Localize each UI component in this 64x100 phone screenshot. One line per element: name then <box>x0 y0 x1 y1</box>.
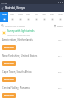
staticText: New Yorkshire, United States <box>2 54 58 58</box>
button[interactable]: New Yorkshire, United States <box>0 53 64 69</box>
staticText: Book now <box>4 46 14 49</box>
staticText: Mon <box>2 13 7 16</box>
staticText: Book now <box>4 94 14 97</box>
staticText: Search for a place <box>5 24 25 27</box>
button[interactable]: Book now <box>2 77 16 82</box>
button[interactable]: Central Valley, Panama <box>0 85 64 100</box>
staticText: Fri <box>35 13 38 16</box>
staticText: Tue <box>10 13 14 16</box>
staticText: Sunny with light winds <box>7 29 35 33</box>
button[interactable]: Back <box>0 4 5 12</box>
staticText: Updated 5 minutes ago <box>7 34 31 37</box>
button[interactable]: Book now <box>2 93 16 98</box>
button[interactable]: Mon <box>56 12 64 22</box>
staticText: 24° <box>58 71 62 74</box>
staticText: 10:30 <box>1 1 8 4</box>
button[interactable]: Filter <box>54 24 63 27</box>
button[interactable]: Mon <box>0 12 8 22</box>
staticText: Wed <box>18 13 23 16</box>
staticText: Sat <box>42 13 46 16</box>
button[interactable]: Wed <box>16 12 24 22</box>
button[interactable]: Sun <box>48 12 56 22</box>
button[interactable]: Sat <box>40 12 48 22</box>
button[interactable]: Fri <box>32 12 40 22</box>
staticText: Sun <box>50 13 54 16</box>
button[interactable]: Cape Town, South Africa <box>0 69 64 85</box>
staticText: Mon <box>58 13 63 16</box>
button[interactable]: Thu <box>24 12 32 22</box>
staticText: Thu <box>26 13 30 16</box>
button[interactable]: Book now <box>2 61 16 66</box>
button[interactable]: Book now <box>2 45 16 50</box>
staticText: Book now <box>4 78 14 81</box>
staticText: Cape Town, South Africa <box>2 70 58 74</box>
staticText: Central Valley, Panama <box>2 86 58 90</box>
staticText: Filter <box>57 24 63 27</box>
staticText: 27° <box>58 87 62 90</box>
staticText: Amsterdam, Netherlands <box>2 38 58 42</box>
button[interactable]: Amsterdam, Netherlands <box>0 37 64 53</box>
staticText: Book now <box>4 62 14 65</box>
button[interactable]: Tue <box>8 12 16 22</box>
button[interactable]: Search for a place <box>1 24 25 27</box>
staticText: Nairobi, Kenya <box>5 6 25 10</box>
staticText: 21° <box>58 55 62 58</box>
staticText: 18° <box>58 39 62 42</box>
